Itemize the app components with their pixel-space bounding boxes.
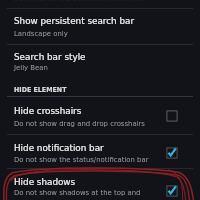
staticText: Do not show shadows at the top and [14,189,141,197]
button[interactable] [0,9,200,42]
staticText: Search bar style [14,52,86,62]
staticText: Hide shadows [14,177,76,187]
button[interactable] [0,168,200,200]
button[interactable] [0,43,200,82]
staticText: Hide crosshairs [14,106,82,116]
staticText: Do not show the persistent search bar [14,0,146,3]
button[interactable] [0,133,200,167]
staticText: Do not show the status/notification bar [14,156,149,164]
staticText: Do not show drag and drop crosshairs [14,120,145,128]
staticText: Landscape only [14,30,68,38]
button[interactable]: Hide notification bar [161,142,183,164]
staticText: Jelly Bean [14,64,48,72]
button[interactable]: Hide shadows [161,180,183,200]
staticText: HIDE ELEMENT [14,86,67,93]
button[interactable]: Hide crosshairs [161,105,183,127]
staticText: Show persistent search bar [14,16,135,26]
button[interactable] [0,95,200,132]
staticText: Hide notification bar [14,143,104,153]
